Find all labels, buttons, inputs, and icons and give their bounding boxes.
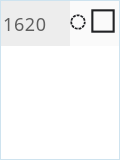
button[interactable]: Stop xyxy=(89,7,117,35)
button[interactable]: Sync xyxy=(68,12,88,32)
staticText: 1620 xyxy=(3,12,47,37)
button[interactable]: 1620 xyxy=(1,1,70,46)
